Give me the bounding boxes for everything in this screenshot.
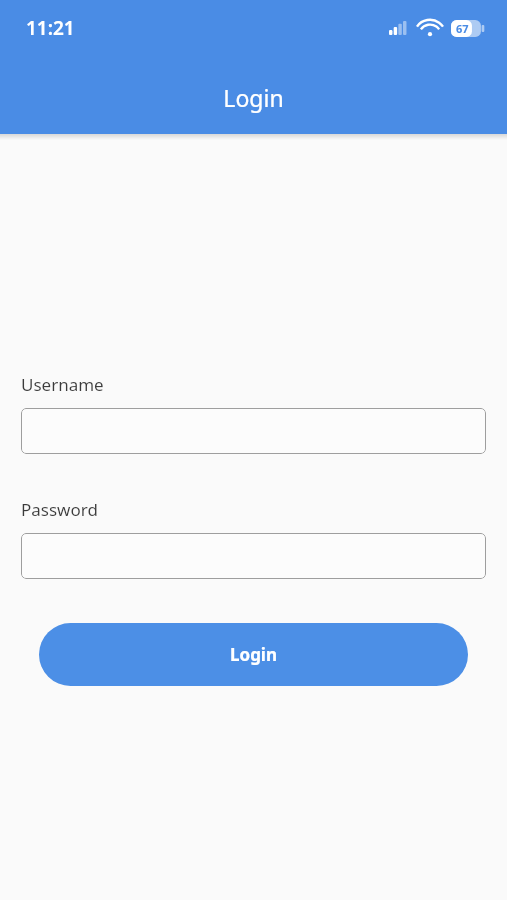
staticText: Login bbox=[0, 82, 507, 113]
button[interactable]: Login bbox=[39, 623, 468, 686]
staticText: 11:21 bbox=[26, 15, 75, 41]
staticText: 67 bbox=[456, 21, 469, 36]
staticText: Password bbox=[21, 498, 98, 521]
button[interactable] bbox=[21, 533, 486, 579]
staticText: Username bbox=[21, 373, 104, 396]
staticText: Login bbox=[230, 643, 278, 666]
button[interactable] bbox=[21, 408, 486, 454]
